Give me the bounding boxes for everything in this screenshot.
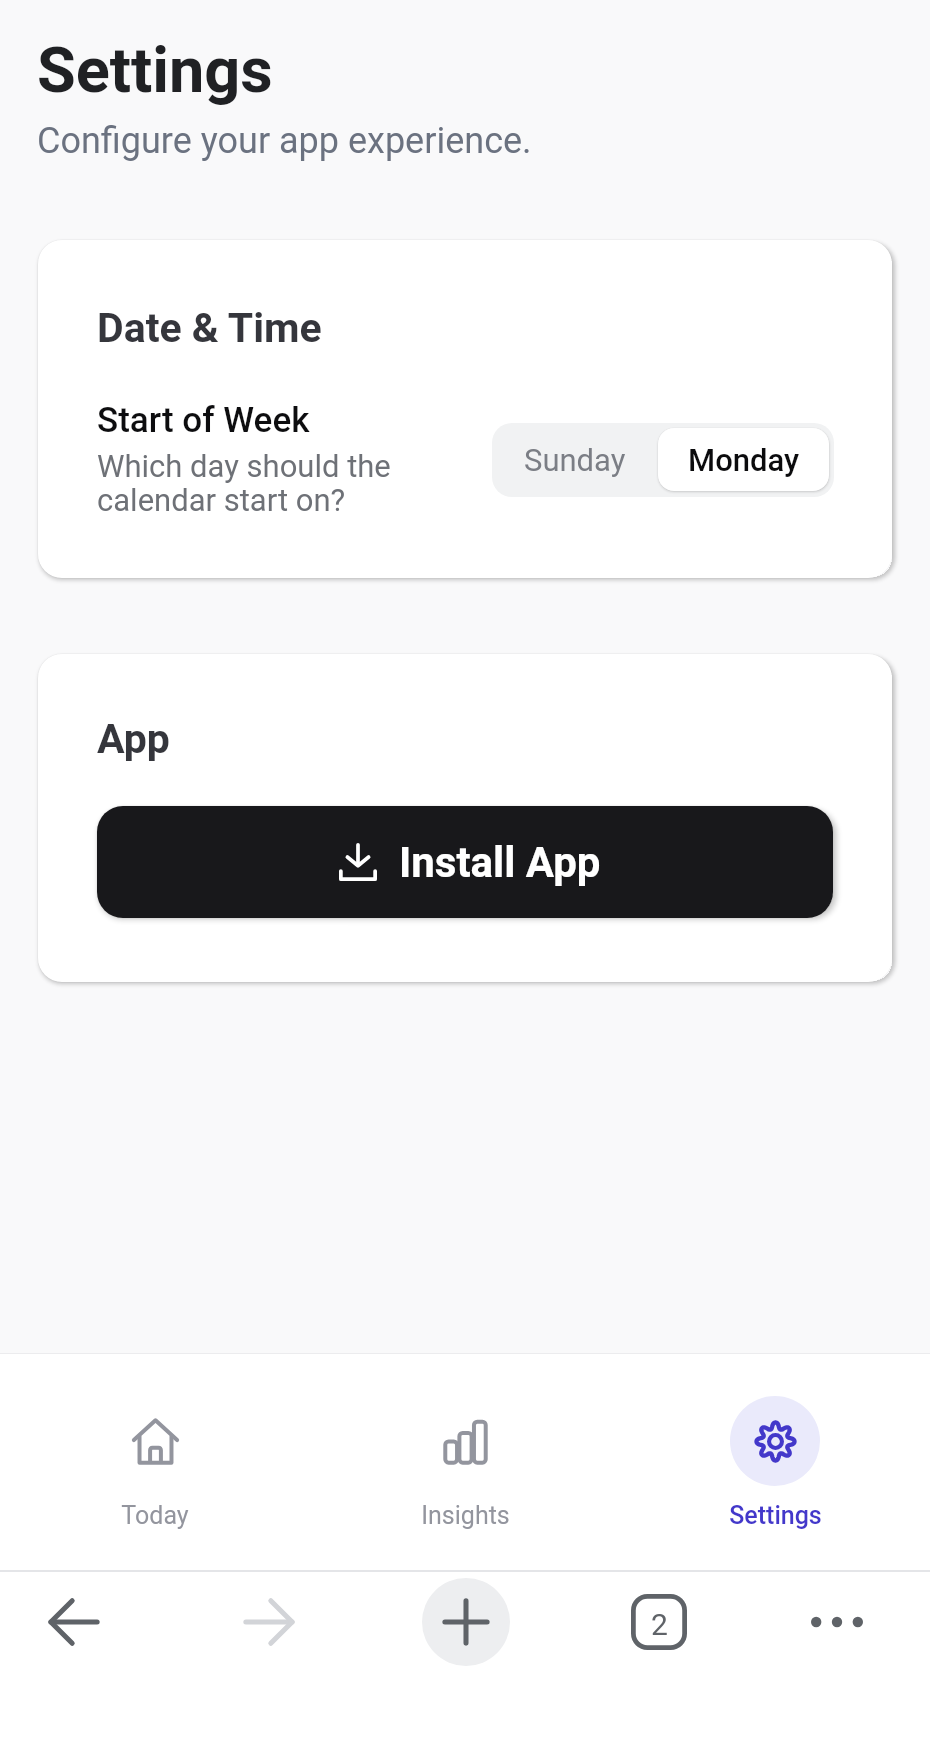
staticText: Date & Time xyxy=(97,304,322,352)
staticText: Settings xyxy=(729,1501,822,1530)
button[interactable]: Insights xyxy=(310,1354,620,1530)
button[interactable]: Tabs xyxy=(615,1578,703,1666)
button[interactable]: Install App xyxy=(97,806,833,918)
button[interactable]: Settings xyxy=(620,1354,930,1530)
staticText: Settings xyxy=(37,34,273,108)
button[interactable]: Today xyxy=(0,1354,310,1530)
staticText: Monday xyxy=(688,442,800,478)
staticText: Today xyxy=(121,1501,189,1530)
staticText: Configure your app experience. xyxy=(37,120,532,162)
staticText: App xyxy=(97,715,170,763)
staticText: Install App xyxy=(399,838,601,887)
staticText: 2 xyxy=(651,1607,668,1642)
button[interactable]: Sunday xyxy=(492,423,658,497)
button[interactable]: Forward xyxy=(225,1578,313,1666)
staticText: Which day should the calendar start on? xyxy=(97,448,478,518)
staticText: Sunday xyxy=(524,442,626,478)
staticText: Insights xyxy=(421,1501,510,1530)
staticText: Start of Week xyxy=(97,400,310,441)
button[interactable]: Monday xyxy=(658,428,829,491)
button[interactable]: Back xyxy=(30,1578,118,1666)
button[interactable]: New tab xyxy=(422,1578,510,1666)
button[interactable]: More options xyxy=(793,1578,881,1666)
